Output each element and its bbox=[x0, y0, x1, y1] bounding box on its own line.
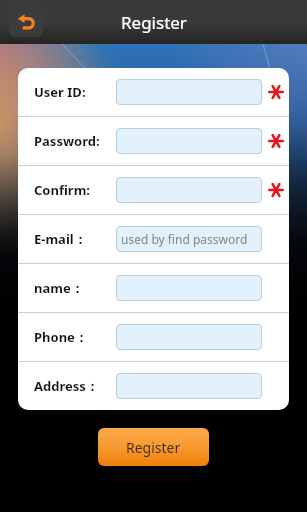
button[interactable]: Register bbox=[98, 428, 209, 466]
staticText: E-mail： bbox=[34, 230, 87, 248]
button[interactable]: Address： bbox=[18, 362, 289, 410]
button[interactable]: Back bbox=[9, 7, 43, 37]
staticText: Register bbox=[126, 438, 181, 457]
button[interactable]: Confirm: bbox=[18, 166, 289, 214]
staticText: Phone： bbox=[34, 328, 88, 346]
staticText: Register bbox=[121, 11, 187, 34]
staticText: Password: bbox=[34, 132, 100, 150]
button[interactable]: Password: bbox=[18, 117, 289, 165]
staticText: used by find password bbox=[121, 231, 248, 247]
staticText: Address： bbox=[34, 377, 99, 395]
staticText: Confirm: bbox=[34, 181, 90, 199]
button[interactable]: Phone： bbox=[18, 313, 289, 361]
staticText: name： bbox=[34, 279, 84, 297]
button[interactable]: E-mail： bbox=[18, 215, 289, 263]
button[interactable]: name： bbox=[18, 264, 289, 312]
button[interactable]: User ID: bbox=[18, 68, 289, 116]
staticText: User ID: bbox=[34, 83, 86, 101]
